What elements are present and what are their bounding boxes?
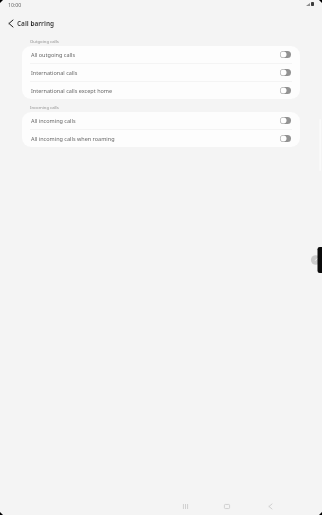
button[interactable]: Navigate up xyxy=(4,16,18,30)
button[interactable]: Toggle off xyxy=(280,51,291,58)
button[interactable]: All incoming calls when roaming xyxy=(22,130,300,147)
staticText: International calls xyxy=(31,69,280,76)
staticText: 10:00 xyxy=(8,1,22,8)
button[interactable]: International calls xyxy=(22,64,300,81)
button[interactable]: All outgoing calls xyxy=(22,46,300,63)
button[interactable]: Open edge panel xyxy=(308,245,322,275)
button[interactable]: All incoming calls xyxy=(22,112,300,129)
staticText: All outgoing calls xyxy=(31,51,280,58)
button[interactable]: Toggle off xyxy=(280,87,291,94)
button[interactable]: Toggle off xyxy=(280,69,291,76)
button[interactable]: Toggle off xyxy=(280,117,291,124)
button[interactable]: Recent apps xyxy=(166,495,204,515)
staticText: Incoming calls xyxy=(30,104,59,110)
button[interactable]: Home xyxy=(208,495,246,515)
staticText: Call barring xyxy=(17,19,55,28)
staticText: International calls except home xyxy=(31,87,280,94)
button[interactable]: Toggle off xyxy=(280,135,291,142)
staticText: All incoming calls xyxy=(31,117,280,124)
staticText: Outgoing calls xyxy=(30,38,59,44)
button[interactable]: International calls except home xyxy=(22,82,300,99)
staticText: All incoming calls when roaming xyxy=(31,135,280,142)
